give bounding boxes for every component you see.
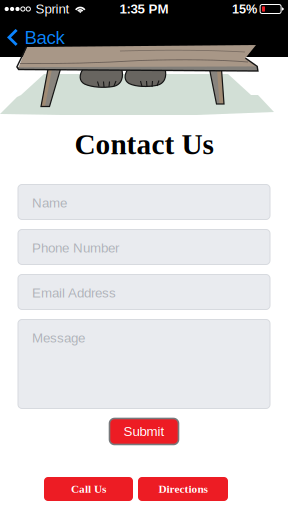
staticText: Message (32, 330, 85, 345)
staticText: Name (32, 195, 67, 210)
button[interactable]: Call Us (44, 477, 133, 501)
staticText: Phone Number (32, 240, 119, 255)
staticText: Back (24, 27, 64, 48)
staticText: 1:35 PM (119, 2, 168, 16)
staticText: Call Us (71, 483, 106, 495)
staticText: Directions (158, 483, 207, 495)
staticText: Contact Us (74, 128, 213, 160)
staticText: 15% (232, 2, 257, 16)
staticText: Email Address (32, 285, 116, 300)
staticText: Sprint (35, 2, 69, 16)
button[interactable]: Submit (109, 418, 178, 444)
staticText: Submit (123, 424, 164, 439)
button[interactable]: Directions (138, 477, 228, 501)
button[interactable]: Back (0, 23, 74, 52)
